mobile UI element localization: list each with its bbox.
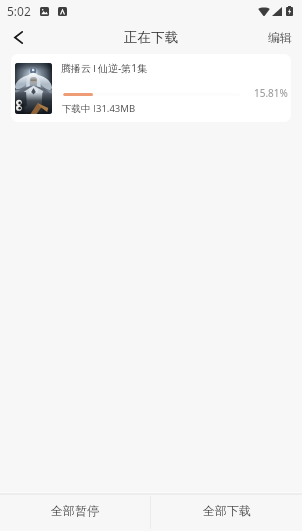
staticText: 仙逆-第1集 <box>98 61 147 75</box>
staticText: 下载中 <box>62 103 91 115</box>
staticText: 31.43MB <box>96 102 136 115</box>
staticText: 编辑 <box>268 30 292 45</box>
button[interactable]: 编辑 <box>256 22 302 52</box>
staticText: 5:02 <box>7 3 31 19</box>
button[interactable]: 全部暂停 <box>0 495 150 531</box>
staticText: 腾播云 <box>61 62 91 75</box>
staticText: 正在下载 <box>124 29 178 46</box>
staticText: 15.81% <box>254 86 288 100</box>
button[interactable]: 腾播云 <box>11 54 291 122</box>
button[interactable]: Back <box>0 22 36 52</box>
staticText: 全部下载 <box>203 503 251 518</box>
staticText: 全部暂停 <box>51 503 99 518</box>
button[interactable]: 全部下载 <box>151 495 302 531</box>
